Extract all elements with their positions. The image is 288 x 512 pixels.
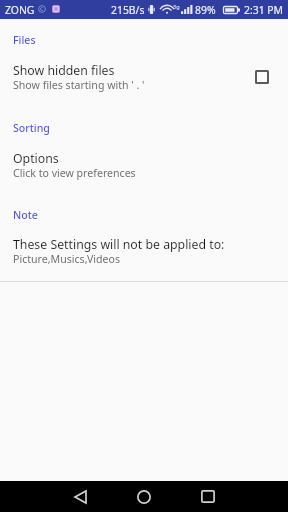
button[interactable]: Show hidden files checkbox: [255, 70, 269, 84]
button[interactable]: Recent apps: [176, 481, 240, 512]
staticText: Options: [13, 150, 59, 167]
staticText: 215B/s: [111, 3, 145, 17]
button[interactable]: Options: [0, 146, 288, 182]
staticText: 2:31 PM: [244, 3, 284, 17]
staticText: Show files starting with ' . ': [13, 78, 145, 92]
staticText: Show hidden files: [13, 62, 115, 79]
staticText: Files: [13, 33, 36, 47]
staticText: Picture,Musics,Videos: [13, 252, 120, 266]
staticText: Click to view preferences: [13, 166, 136, 180]
staticText: Note: [13, 208, 38, 222]
staticText: 3g: [173, 3, 180, 10]
staticText: ZONG: [5, 3, 35, 17]
staticText: Sorting: [13, 121, 50, 135]
button[interactable]: Home: [112, 481, 176, 512]
staticText: These Settings will not be applied to:: [13, 236, 225, 253]
button[interactable]: Back: [48, 481, 112, 512]
button[interactable]: These Settings will not be applied to:: [0, 232, 288, 268]
staticText: 89%: [195, 3, 216, 17]
button[interactable]: Show hidden files: [0, 58, 288, 94]
